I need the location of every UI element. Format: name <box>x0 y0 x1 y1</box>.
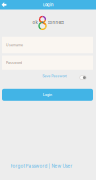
button[interactable]: Username <box>2 37 93 53</box>
button[interactable]: Login <box>2 89 93 101</box>
button[interactable]: Password <box>2 55 93 70</box>
staticText: connect <box>47 20 63 25</box>
button[interactable]: New User <box>51 163 72 169</box>
button[interactable]: Save Password <box>80 72 86 79</box>
staticText: Save Password <box>42 74 67 78</box>
button[interactable]: Forgot Password <box>10 163 47 169</box>
staticText: Password <box>6 61 22 65</box>
button[interactable]: Back <box>0 0 16 9</box>
staticText: Username <box>6 43 23 47</box>
staticText: Forgot Password <box>10 163 47 169</box>
button[interactable]: Save Password <box>42 72 67 80</box>
staticText: ok <box>32 20 37 25</box>
staticText: Login <box>43 2 53 7</box>
staticText: Login <box>43 93 52 97</box>
staticText: | <box>47 163 51 169</box>
staticText: New User <box>51 163 72 169</box>
